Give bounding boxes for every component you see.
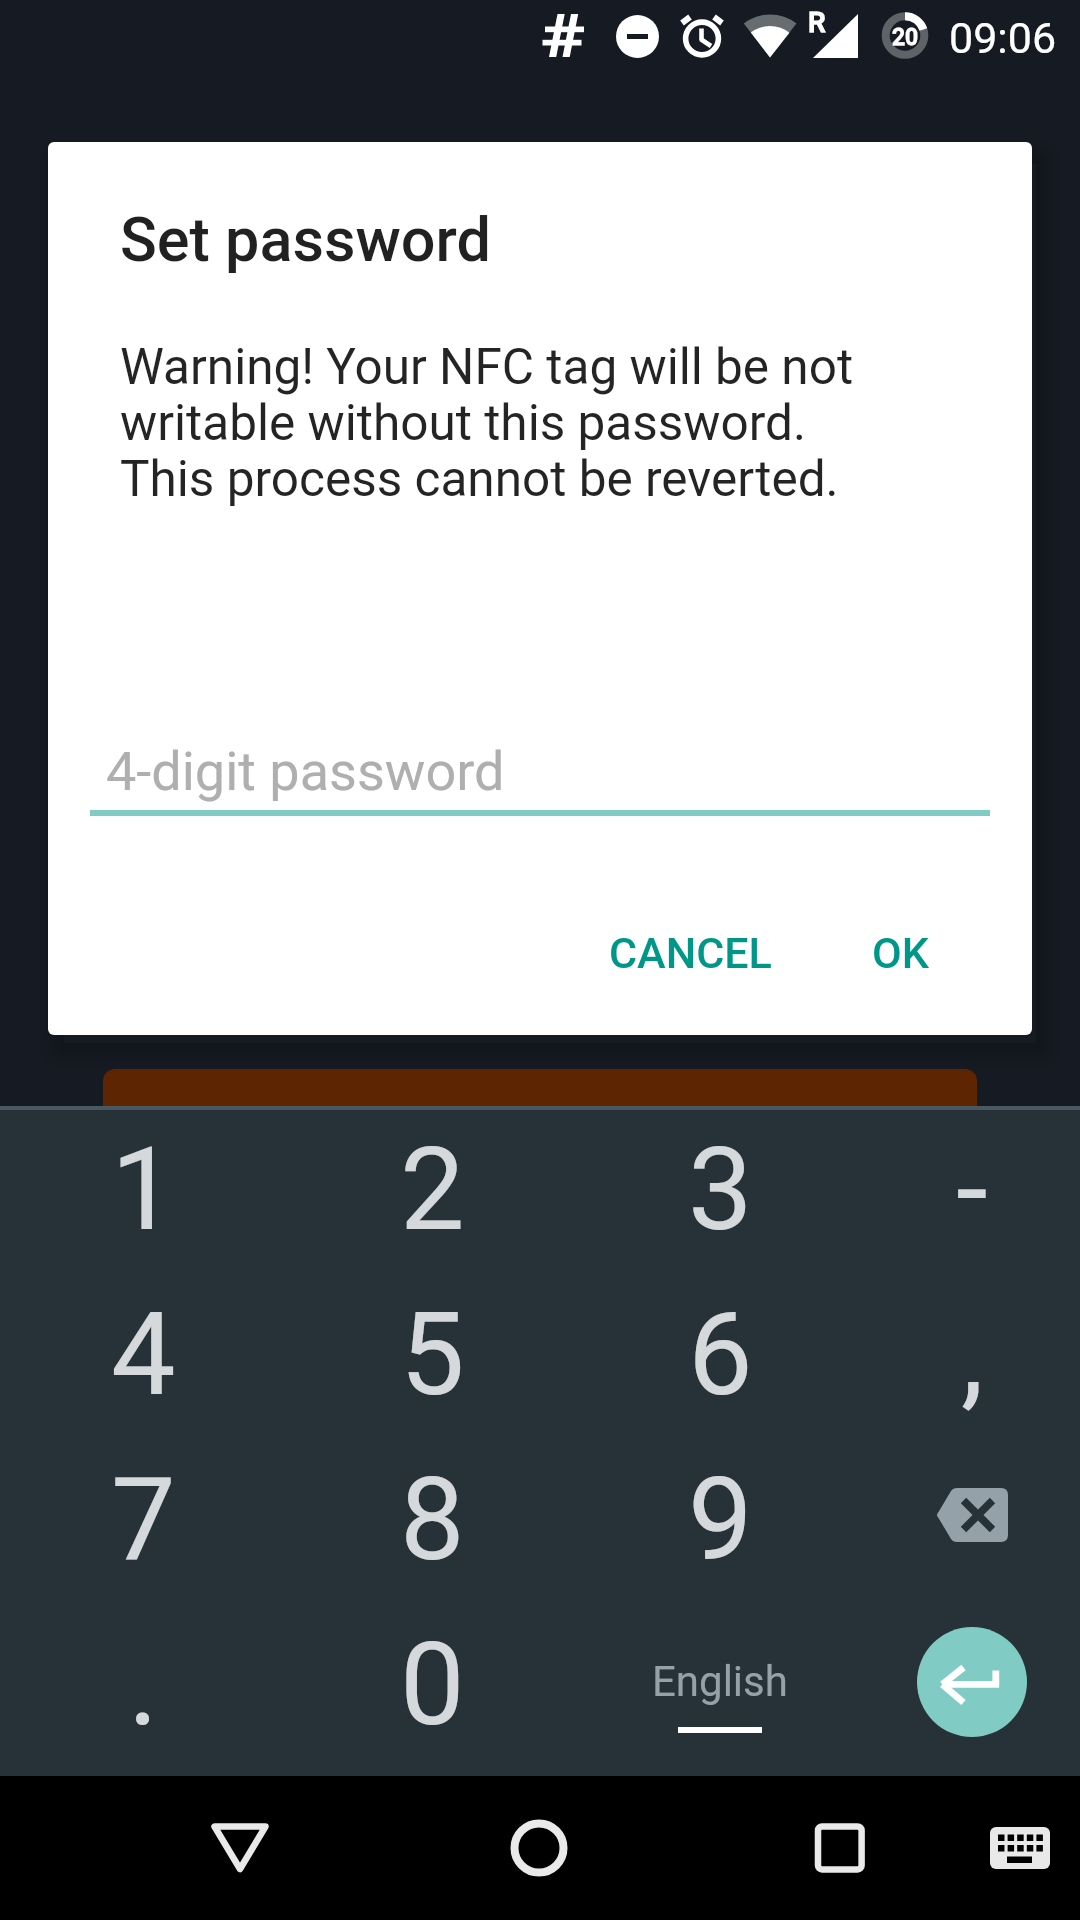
button[interactable]: 9 [620,1435,820,1603]
button[interactable]: 6 [620,1270,820,1438]
button[interactable]: 2 [332,1105,532,1273]
staticText: 5 [400,1287,465,1422]
button[interactable]: , [872,1270,1072,1438]
button[interactable]: OK [826,898,974,1008]
staticText: Warning! Your NFC tag will be not writab… [120,338,854,508]
button[interactable]: 5 [332,1270,532,1438]
button[interactable]: Backspace [872,1431,1072,1599]
staticText: - [956,1122,988,1257]
staticText: 1 [111,1122,176,1257]
button[interactable]: 1 [43,1105,243,1273]
button[interactable]: - [872,1105,1072,1273]
staticText: OK [872,928,929,978]
button[interactable]: 8 [332,1435,532,1603]
button[interactable]: English [600,1600,840,1768]
staticText: 20 [892,24,919,51]
button[interactable]: Back [170,1776,310,1920]
staticText: English [652,1657,788,1706]
staticText: 4-digit password [106,740,505,803]
button[interactable]: 3 [620,1105,820,1273]
staticText: 9 [688,1452,753,1587]
button[interactable]: 4 [43,1270,243,1438]
staticText: 4 [111,1287,176,1422]
staticText: 3 [688,1122,753,1257]
staticText: . [128,1617,159,1752]
staticText: 09:06 [949,13,1057,63]
button[interactable]: . [43,1600,243,1768]
button[interactable]: CANCEL [582,898,798,1008]
staticText: 8 [400,1452,465,1587]
staticText: 7 [111,1452,176,1587]
staticText: 0 [400,1617,465,1752]
button[interactable]: Recent apps [770,1776,910,1920]
button[interactable]: Home [469,1776,609,1920]
staticText: R [808,6,826,39]
button[interactable]: 7 [43,1435,243,1603]
staticText: CANCEL [609,928,772,978]
staticText: , [961,1287,984,1422]
button[interactable]: Switch keyboard [960,1776,1080,1920]
button[interactable]: 0 [332,1600,532,1768]
button[interactable]: Enter [917,1627,1027,1737]
staticText: 6 [688,1287,753,1422]
staticText: Set password [120,204,491,275]
staticText: 2 [400,1122,465,1257]
